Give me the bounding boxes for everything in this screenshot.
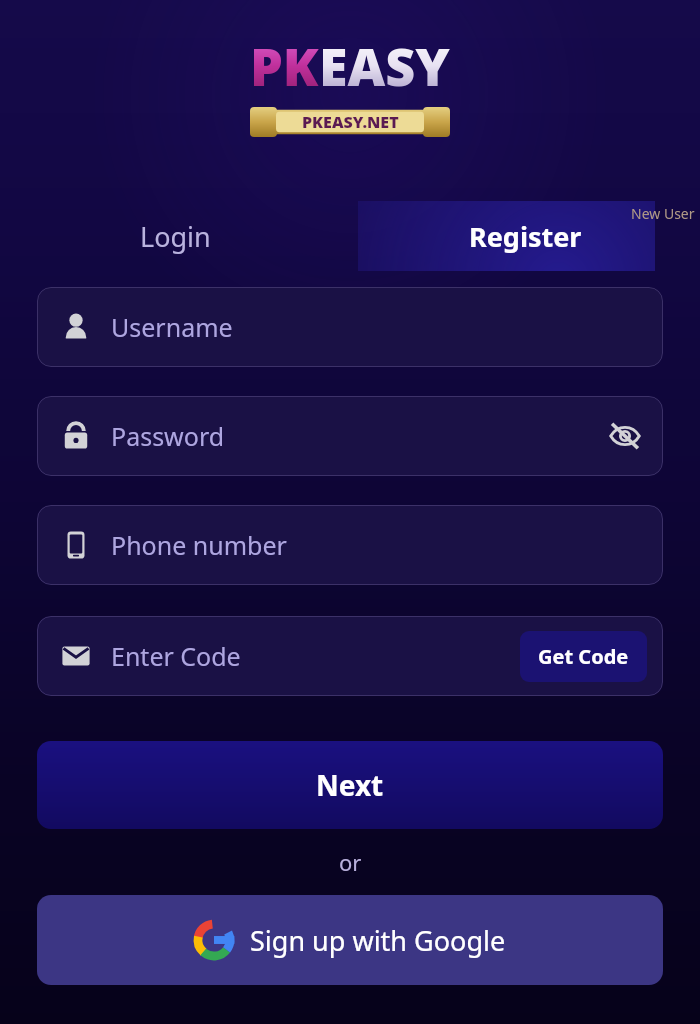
button[interactable]: Enter Code	[37, 616, 663, 696]
staticText: Sign up with Google	[250, 922, 506, 959]
staticText: PK	[250, 30, 319, 101]
button[interactable]: Password	[37, 396, 663, 476]
staticText: or	[339, 847, 362, 877]
button[interactable]: Show password	[603, 414, 647, 458]
button[interactable]: Register	[350, 196, 700, 276]
button[interactable]: Username	[37, 287, 663, 367]
staticText: PKEASY.NET	[302, 111, 399, 133]
staticText: Username	[111, 310, 233, 344]
staticText: Phone number	[111, 528, 287, 562]
button[interactable]: Next	[37, 741, 663, 829]
staticText: Password	[111, 419, 225, 453]
staticText: Next	[316, 766, 384, 804]
staticText: Get Code	[538, 643, 629, 670]
staticText: EASY	[319, 30, 450, 101]
button[interactable]: Phone number	[37, 505, 663, 585]
button[interactable]: Login	[0, 196, 350, 276]
staticText: Register	[469, 218, 582, 255]
button[interactable]: Get Code	[520, 631, 647, 682]
button[interactable]: Sign up with Google	[37, 895, 663, 985]
staticText: New User	[631, 204, 695, 223]
staticText: Login	[140, 218, 211, 255]
staticText: Enter Code	[111, 639, 241, 673]
